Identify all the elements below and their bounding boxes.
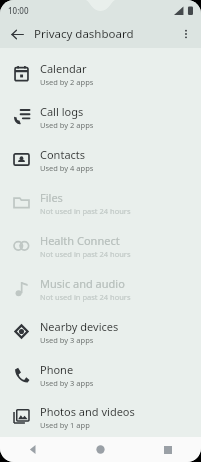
button[interactable]: Music and audio — [0, 267, 201, 310]
button[interactable]: Contacts — [0, 138, 201, 181]
button[interactable]: Recent apps — [134, 437, 201, 462]
staticText: Used by 3 apps — [40, 378, 94, 388]
staticText: Used by 2 apps — [40, 77, 94, 87]
staticText: Used by 4 apps — [40, 163, 94, 173]
staticText: Files — [40, 190, 63, 205]
staticText: Used by 2 apps — [40, 120, 94, 130]
staticText: Music and audio — [40, 276, 125, 291]
staticText: 10:00 — [8, 5, 29, 16]
staticText: Call logs — [40, 104, 84, 119]
button[interactable]: Home — [67, 437, 134, 462]
button[interactable]: Nearby devices — [0, 310, 201, 353]
button[interactable]: Back — [0, 437, 67, 462]
staticText: Not used in past 24 hours — [40, 292, 131, 302]
button[interactable]: Phone — [0, 353, 201, 396]
button[interactable]: More options — [175, 23, 197, 45]
staticText: Not used in past 24 hours — [40, 249, 131, 259]
staticText: Used by 1 app — [40, 420, 90, 430]
staticText: Phone — [40, 362, 74, 377]
staticText: Not used in past 24 hours — [40, 206, 131, 216]
button[interactable]: Files — [0, 181, 201, 224]
staticText: Health Connect — [40, 233, 120, 248]
staticText: Privacy dashboard — [34, 26, 134, 42]
button[interactable]: Call logs — [0, 95, 201, 138]
staticText: Contacts — [40, 147, 86, 162]
staticText: Calendar — [40, 61, 87, 76]
staticText: Nearby devices — [40, 319, 119, 334]
button[interactable]: Calendar — [0, 52, 201, 95]
button[interactable]: Back — [6, 23, 28, 45]
staticText: Used by 3 apps — [40, 335, 94, 345]
button[interactable]: Health Connect — [0, 224, 201, 267]
staticText: Photos and videos — [40, 404, 135, 419]
button[interactable]: Photos and videos — [0, 396, 201, 437]
